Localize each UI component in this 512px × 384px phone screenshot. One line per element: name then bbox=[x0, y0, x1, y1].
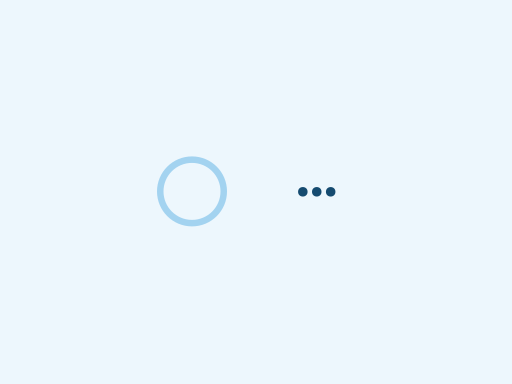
group: Typing bbox=[298, 187, 335, 197]
group: Loading bbox=[160, 160, 224, 223]
